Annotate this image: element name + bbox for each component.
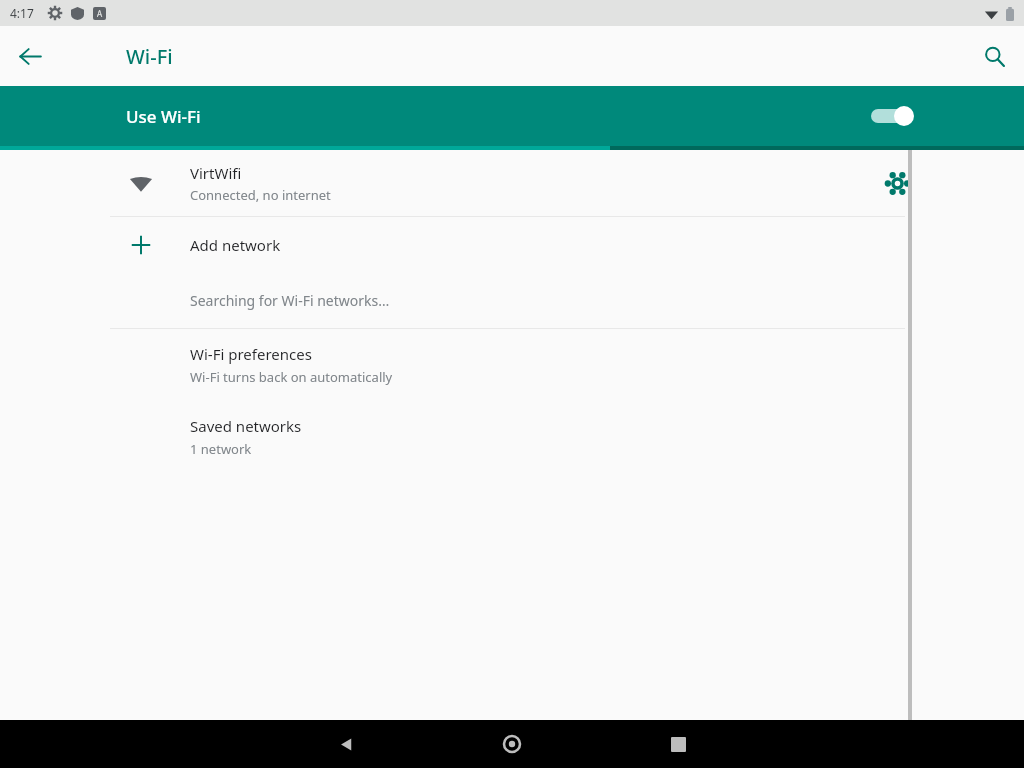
button[interactable]: Saved networks [0,401,1024,473]
staticText: Saved networks [190,416,302,436]
button[interactable]: Search [972,34,1016,78]
staticText: 4:17 [10,5,34,21]
staticText: 1 network [190,440,252,458]
button[interactable]: Use Wi-Fi [0,86,1024,146]
button[interactable]: Back [326,724,366,764]
staticText: Use Wi-Fi [126,105,201,128]
button[interactable]: Recents [658,724,698,764]
button[interactable]: Home [492,724,532,764]
staticText: Searching for Wi-Fi networks… [190,291,390,310]
button[interactable]: Add network [0,217,1024,273]
staticText: Add network [190,235,281,255]
button[interactable]: Network settings [876,162,918,204]
staticText: Connected, no internet [190,186,331,204]
staticText: Wi-Fi turns back on automatically [190,368,393,386]
staticText: VirtWifi [190,163,242,183]
button[interactable]: Wi-Fi preferences [0,329,1024,401]
button[interactable]: VirtWifi [0,150,1024,216]
staticText: Wi-Fi preferences [190,344,312,364]
staticText: Wi-Fi [126,43,173,70]
staticText: A [97,8,103,19]
button[interactable]: Back [8,34,52,78]
